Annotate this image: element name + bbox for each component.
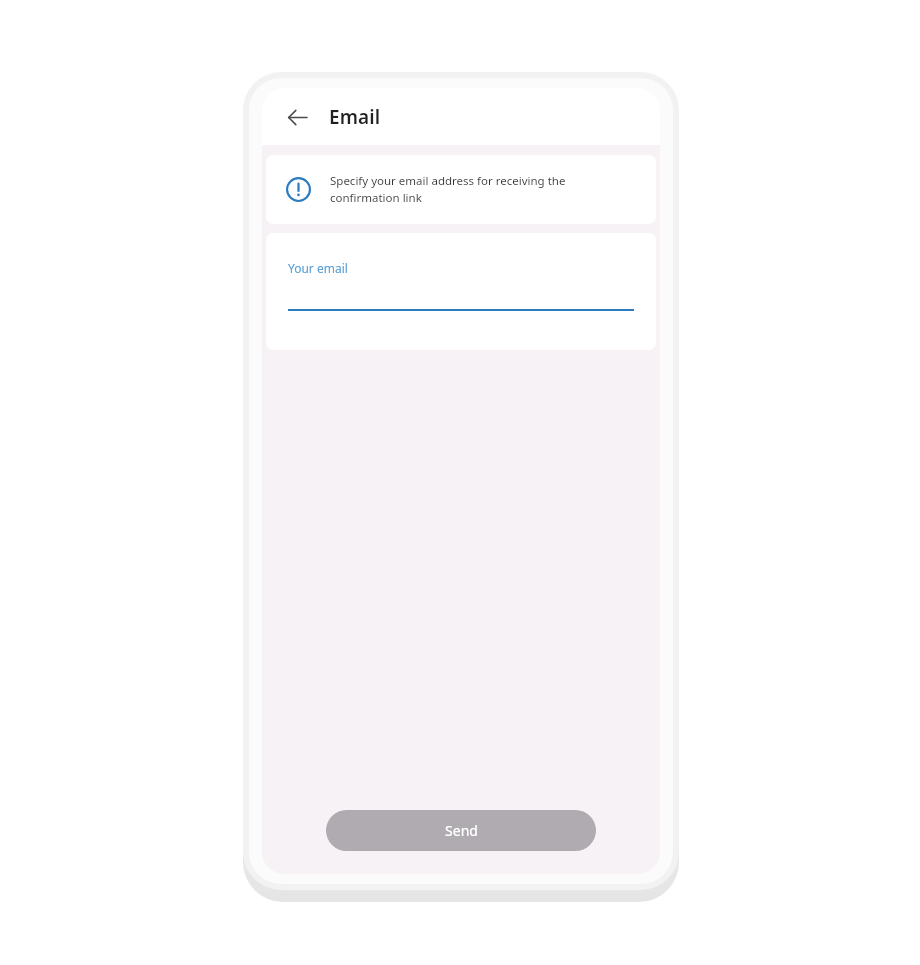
staticText: Send — [445, 821, 478, 840]
staticText: Specify your email address for receiving… — [330, 173, 634, 205]
button[interactable]: Send — [326, 810, 596, 851]
button[interactable]: Specify your email address for receiving… — [266, 155, 656, 224]
staticText: Email — [329, 104, 381, 130]
button[interactable]: Back — [280, 100, 314, 134]
staticText: Your email — [288, 260, 348, 276]
button[interactable]: Your email — [266, 233, 656, 350]
